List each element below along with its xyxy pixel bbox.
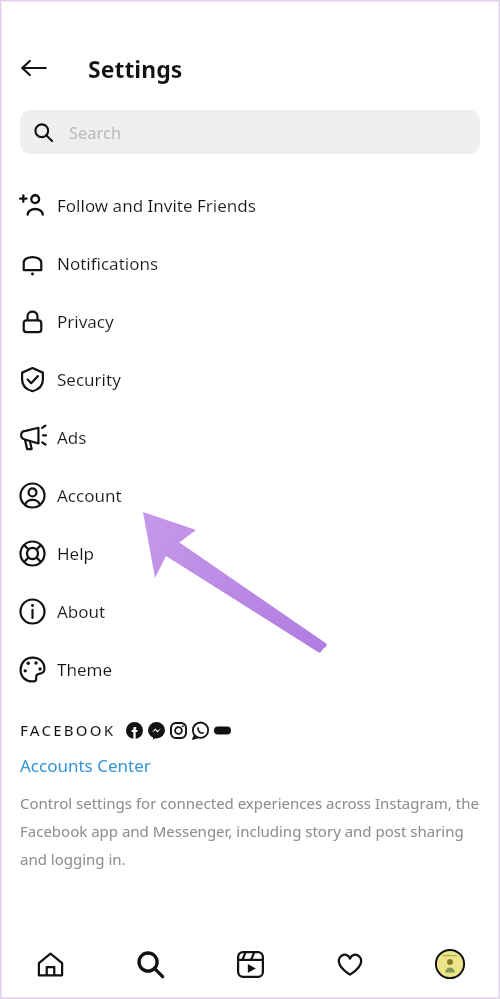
button[interactable]: Reels: [200, 929, 300, 999]
button[interactable]: About: [0, 582, 500, 640]
button[interactable]: Search: [20, 110, 480, 154]
button[interactable]: Security: [0, 350, 500, 408]
button[interactable]: Privacy: [0, 292, 500, 350]
staticText: FACEBOOK: [20, 720, 116, 740]
staticText: Accounts Center: [20, 754, 151, 777]
staticText: Follow and Invite Friends: [57, 194, 256, 217]
button[interactable]: Follow and Invite Friends: [0, 176, 500, 234]
staticText: Account: [57, 484, 122, 507]
staticText: Security: [57, 368, 121, 391]
button[interactable]: Profile: [400, 929, 500, 999]
staticText: Privacy: [57, 310, 114, 333]
staticText: Help: [57, 542, 95, 565]
button[interactable]: Search: [100, 929, 200, 999]
button[interactable]: Theme: [0, 640, 500, 698]
staticText: Settings: [88, 53, 183, 84]
button[interactable]: Home: [0, 929, 100, 999]
button[interactable]: Back: [14, 48, 54, 88]
staticText: Ads: [57, 426, 87, 449]
button[interactable]: Help: [0, 524, 500, 582]
staticText: Search: [69, 121, 122, 143]
button[interactable]: Notifications: [0, 234, 500, 292]
staticText: Theme: [57, 658, 113, 681]
staticText: Control settings for connected experienc…: [20, 793, 482, 869]
button[interactable]: Account: [0, 466, 500, 524]
button[interactable]: Accounts Center: [20, 754, 151, 777]
staticText: About: [57, 600, 106, 623]
button[interactable]: Activity: [300, 929, 400, 999]
staticText: Notifications: [57, 252, 159, 275]
button[interactable]: Ads: [0, 408, 500, 466]
